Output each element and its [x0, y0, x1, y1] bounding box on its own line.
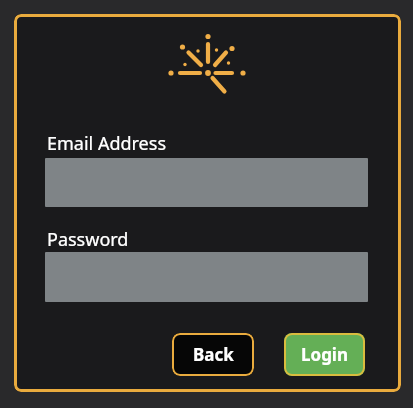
staticText: Back	[193, 343, 234, 366]
button[interactable]: Back	[172, 333, 254, 376]
staticText: Email Address	[47, 131, 167, 156]
staticText: Password	[47, 227, 129, 252]
staticText: Login	[301, 343, 349, 366]
button[interactable]: Login	[284, 333, 365, 376]
